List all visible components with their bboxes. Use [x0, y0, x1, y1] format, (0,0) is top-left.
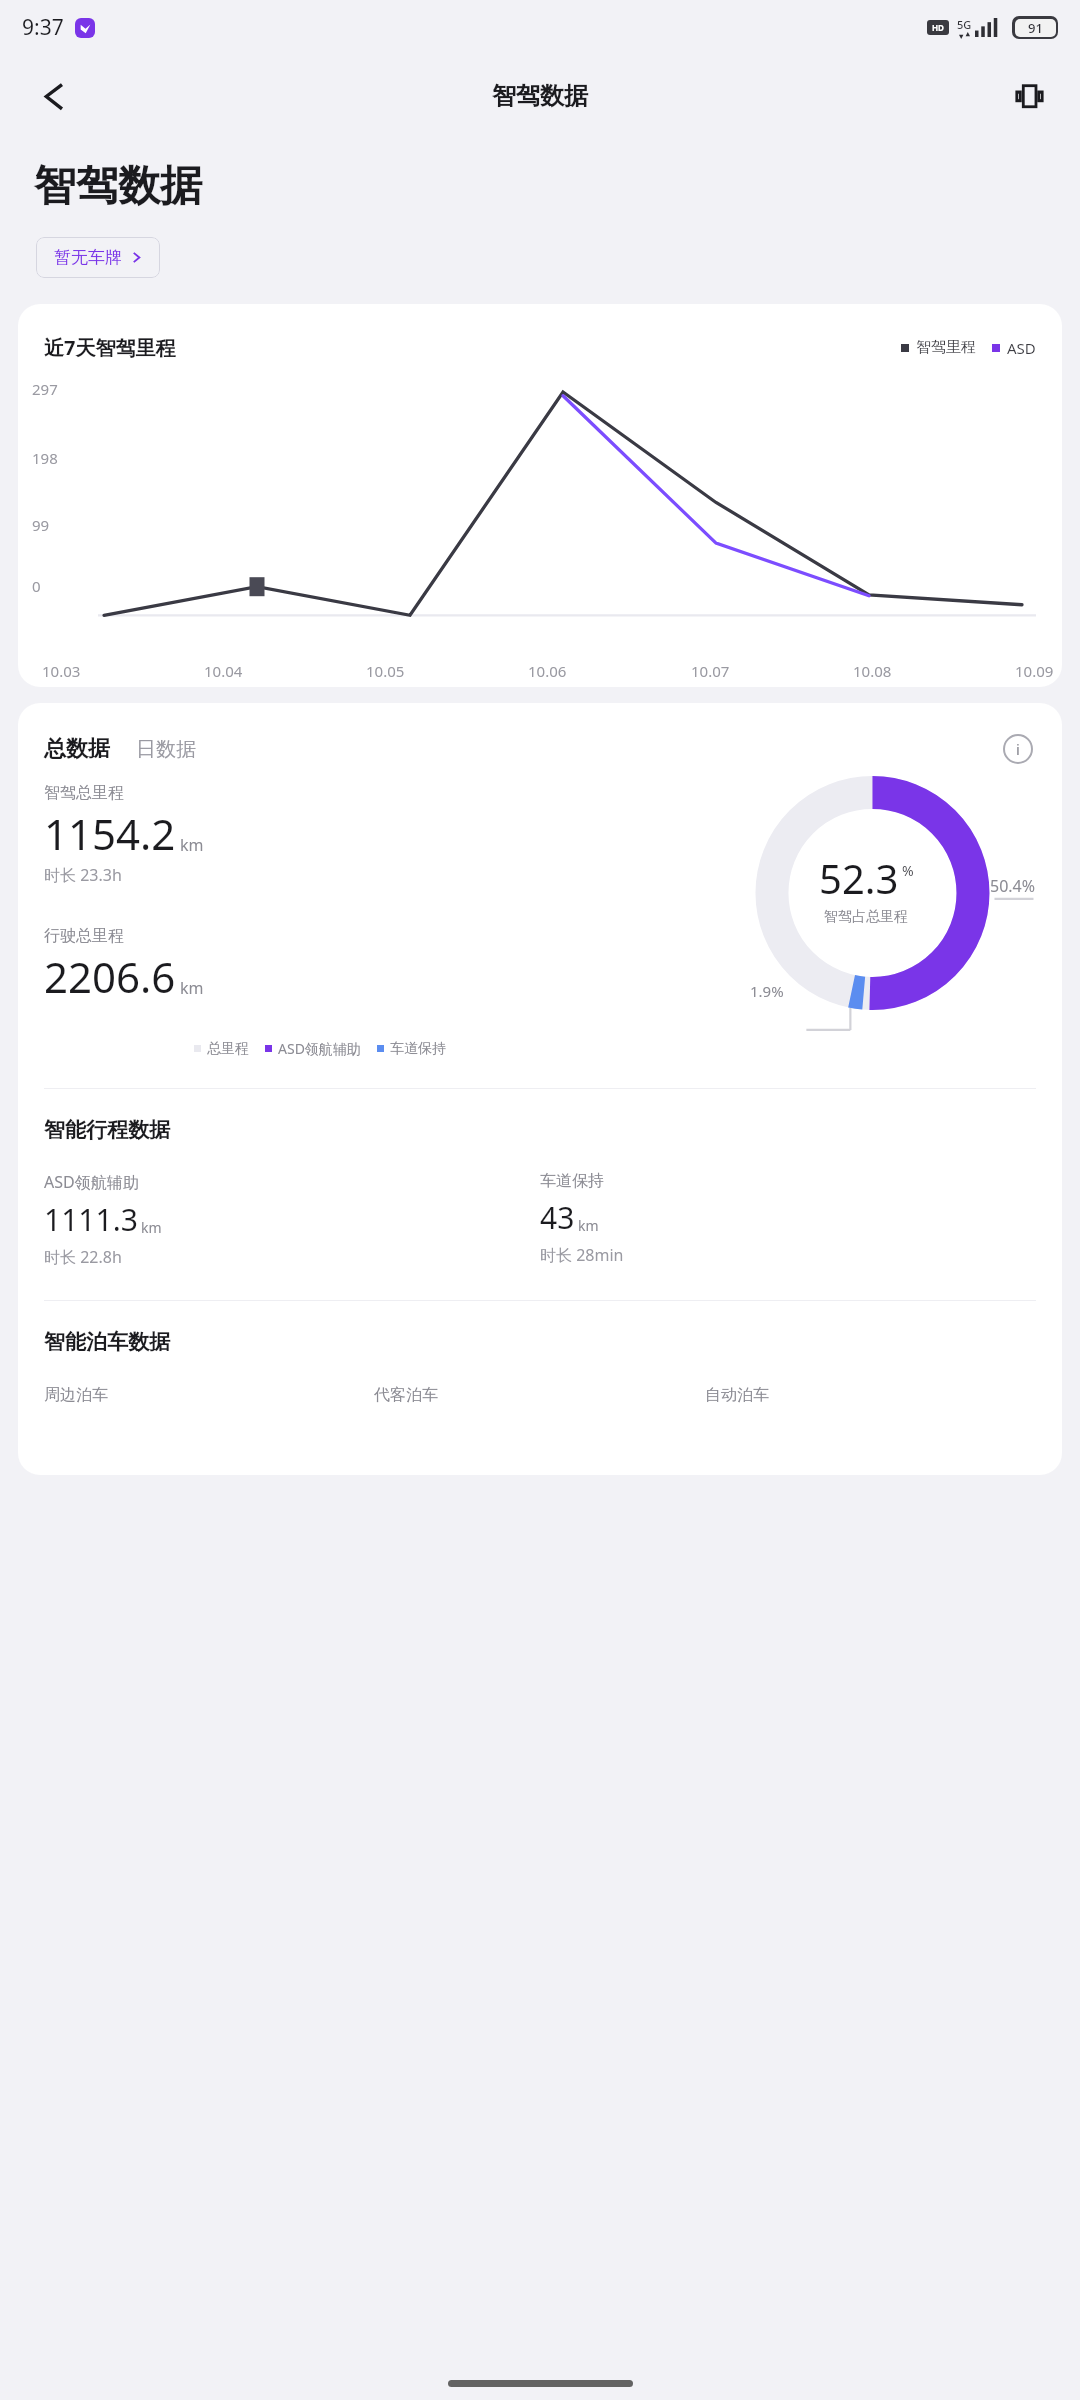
staticText: 智能泊车数据 [44, 1329, 170, 1355]
staticText: 10.09 [1015, 661, 1054, 681]
staticText: 智驾占总里程 [824, 908, 908, 926]
staticText: 198 [32, 448, 58, 468]
staticText: 10.06 [528, 661, 567, 681]
staticText: km [141, 1218, 162, 1237]
staticText: 智驾数据 [492, 81, 588, 111]
staticText: 2206.6 [44, 948, 176, 1005]
button[interactable]: Cast to device [1002, 69, 1056, 123]
staticText: 代客泊车 [374, 1385, 438, 1405]
button[interactable]: Info [1000, 731, 1036, 767]
staticText: 297 [32, 379, 58, 399]
button[interactable]: 总数据 [44, 735, 110, 763]
staticText: 车道保持 [540, 1171, 604, 1191]
staticText: 0 [32, 576, 41, 596]
staticText: 周边泊车 [44, 1385, 108, 1405]
staticText: km [578, 1216, 599, 1235]
staticText: 1154.2 [44, 805, 176, 862]
staticText: 52.3 [819, 851, 899, 905]
staticText: 智驾里程 [916, 338, 976, 357]
staticText: 10.04 [204, 661, 243, 681]
staticText: 9:37 [22, 13, 64, 42]
staticText: 99 [32, 515, 50, 535]
staticText: 10.07 [691, 661, 730, 681]
staticText: 10.03 [42, 661, 81, 681]
staticText: ASD领航辅助 [44, 1171, 139, 1193]
button[interactable]: 日数据 [136, 737, 196, 762]
staticText: 总数据 [44, 735, 110, 763]
staticText: HD [932, 22, 944, 33]
staticText: 自动泊车 [705, 1385, 769, 1405]
button[interactable]: 暂无车牌 [36, 237, 160, 278]
staticText: 5G [957, 17, 972, 32]
staticText: 日数据 [136, 737, 196, 762]
staticText: 总里程 [207, 1040, 249, 1058]
button[interactable]: Back [28, 69, 82, 123]
staticText: i [1016, 739, 1020, 759]
staticText: 91 [1028, 19, 1043, 37]
staticText: 智驾数据 [34, 160, 202, 213]
staticText: 时长 22.8h [44, 1246, 122, 1268]
staticText: 近7天智驾里程 [44, 334, 176, 361]
staticText: 43 [540, 1197, 575, 1238]
staticText: km [180, 977, 204, 999]
staticText: km [180, 834, 204, 856]
staticText: 50.4% [990, 875, 1036, 897]
staticText: ASD领航辅助 [278, 1039, 361, 1058]
staticText: % [902, 861, 914, 880]
staticText: 智驾总里程 [44, 783, 124, 803]
staticText: 10.05 [366, 661, 405, 681]
staticText: 时长 23.3h [44, 864, 122, 886]
staticText: 车道保持 [390, 1040, 446, 1058]
staticText: 1.9% [750, 981, 784, 1001]
staticText: ASD [1007, 338, 1036, 358]
staticText: 10.08 [853, 661, 892, 681]
staticText: 时长 28min [540, 1244, 624, 1266]
staticText: 行驶总里程 [44, 926, 124, 946]
staticText: 1111.3 [44, 1199, 138, 1240]
staticText: 暂无车牌 [54, 247, 122, 268]
staticText: 智能行程数据 [44, 1117, 170, 1143]
